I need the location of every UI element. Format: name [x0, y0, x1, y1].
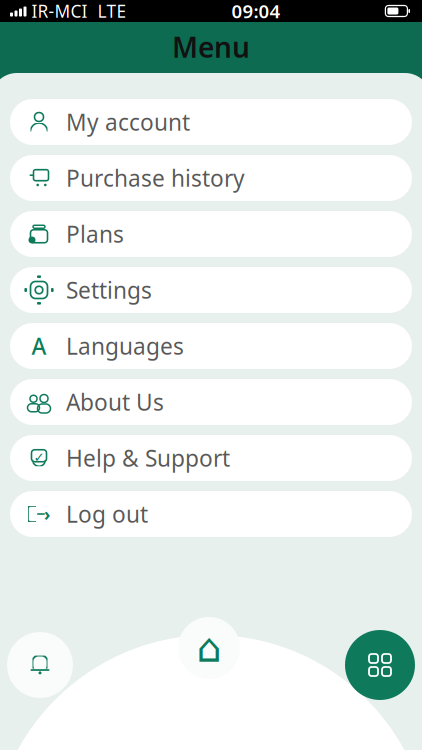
- button[interactable]: ✓: [10, 435, 412, 481]
- button[interactable]: Settings: [10, 267, 412, 313]
- staticText: IR-MCI: [26, 0, 87, 22]
- button[interactable]: Menu: [0, 22, 422, 72]
- staticText: Menu: [172, 28, 250, 66]
- staticText: My account: [66, 107, 190, 137]
- staticText: Log out: [66, 499, 148, 529]
- button[interactable]: Plans: [10, 211, 412, 257]
- button[interactable]: About Us: [10, 379, 412, 425]
- button[interactable]: Home: [178, 617, 240, 679]
- staticText: LTE: [87, 0, 126, 22]
- button[interactable]: Purchase history: [10, 155, 412, 201]
- staticText: 09:04: [231, 0, 280, 23]
- staticText: ›: [44, 502, 50, 525]
- button[interactable]: A: [10, 323, 412, 369]
- staticText: A: [31, 331, 46, 361]
- button[interactable]: Apps: [345, 630, 415, 700]
- staticText: About Us: [66, 387, 164, 417]
- staticText: Plans: [66, 219, 124, 249]
- staticText: Help & Support: [66, 443, 230, 473]
- staticText: Purchase history: [66, 163, 245, 193]
- staticText: Settings: [66, 275, 152, 305]
- button[interactable]: My account: [10, 99, 412, 145]
- staticText: ✓: [33, 450, 44, 465]
- button[interactable]: ›: [10, 491, 412, 537]
- staticText: Languages: [66, 331, 184, 361]
- staticText: ⌂: [196, 625, 221, 671]
- button[interactable]: Notifications: [7, 632, 73, 698]
